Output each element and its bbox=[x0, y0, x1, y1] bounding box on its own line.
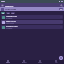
staticText: Library bbox=[5, 4, 14, 7]
button[interactable]: Search bbox=[60, 4, 63, 7]
button[interactable]: Create new bbox=[59, 56, 63, 60]
staticText: Go bbox=[60, 8, 63, 10]
staticText: All bbox=[2, 12, 4, 14]
staticText: Mix bbox=[7, 12, 10, 14]
staticText: You bbox=[55, 62, 58, 64]
staticText: Browse bbox=[22, 62, 27, 64]
button[interactable]: Saved bbox=[32, 60, 48, 64]
staticText: 1 hr 12 min bbox=[6, 22, 15, 24]
button[interactable]: You bbox=[48, 60, 64, 64]
staticText: 24 tracks bbox=[6, 17, 13, 19]
staticText: Saved bbox=[38, 62, 42, 64]
button[interactable]: Deep Focus bbox=[1, 20, 63, 24]
button[interactable]: Go bbox=[59, 8, 63, 10]
button[interactable]: Evening Calm bbox=[1, 25, 63, 29]
button[interactable]: Browse bbox=[16, 60, 32, 64]
staticText: Morning Mix bbox=[6, 15, 17, 17]
button[interactable]: Menu bbox=[1, 4, 4, 7]
staticText: Home bbox=[6, 62, 10, 64]
button[interactable]: All bbox=[1, 12, 5, 14]
staticText: New bbox=[11, 12, 15, 14]
button[interactable]: Your picks bbox=[0, 7, 64, 11]
button[interactable]: New bbox=[11, 12, 15, 14]
staticText: Deep Focus bbox=[6, 20, 16, 22]
staticText: Evening Calm bbox=[6, 25, 18, 27]
staticText: Your picks bbox=[5, 8, 17, 11]
button[interactable]: Morning Mix bbox=[1, 15, 63, 19]
button[interactable]: Mix bbox=[6, 12, 10, 14]
staticText: 18 tracks bbox=[6, 27, 13, 29]
button[interactable]: Home bbox=[0, 60, 16, 64]
